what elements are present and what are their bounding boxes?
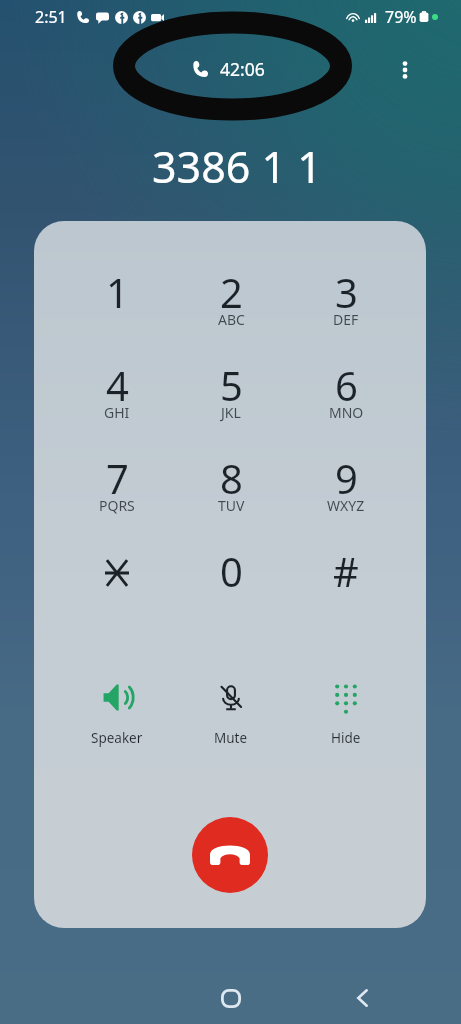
button[interactable]: Hide <box>306 683 386 745</box>
button[interactable]: 0 <box>183 544 279 620</box>
button[interactable]: 4 <box>69 358 165 434</box>
staticText: 3 <box>335 265 358 319</box>
staticText: ABC <box>218 310 245 329</box>
staticText: DEF <box>333 310 359 329</box>
button[interactable]: 2 <box>183 265 279 341</box>
button[interactable]: More options <box>387 52 423 88</box>
staticText: 5 <box>220 358 243 412</box>
button[interactable]: 1 <box>69 265 165 341</box>
staticText: Mute <box>214 729 248 747</box>
button[interactable]: 8 <box>183 451 279 527</box>
staticText: 9 <box>335 451 358 505</box>
staticText: MNO <box>329 403 364 422</box>
button[interactable]: 3 <box>298 265 394 341</box>
staticText: 4 <box>106 358 129 412</box>
staticText: # <box>333 544 359 598</box>
staticText: 8 <box>220 451 243 505</box>
staticText: Speaker <box>91 729 143 747</box>
staticText: 3386 1 1 <box>152 137 322 196</box>
button[interactable]: End call <box>192 817 268 893</box>
button[interactable]: 9 <box>298 451 394 527</box>
staticText: 6 <box>335 358 358 412</box>
button[interactable]: 5 <box>183 358 279 434</box>
button[interactable]: 7 <box>69 451 165 527</box>
staticText: JKL <box>221 403 241 422</box>
staticText: 42:06 <box>220 57 265 81</box>
button[interactable]: 6 <box>298 358 394 434</box>
staticText: PQRS <box>99 496 135 515</box>
staticText: TUV <box>218 496 245 515</box>
button[interactable] <box>69 544 165 620</box>
staticText: Hide <box>331 729 361 747</box>
staticText: 1 <box>106 265 129 319</box>
button[interactable]: Home <box>214 981 248 1015</box>
staticText: WXYZ <box>327 496 365 515</box>
button[interactable]: Speaker <box>77 683 157 745</box>
staticText: 79% <box>385 6 417 28</box>
button[interactable]: Back <box>345 981 379 1015</box>
staticText: 0 <box>220 544 243 598</box>
button[interactable]: # <box>298 544 394 620</box>
staticText: 2:51 <box>35 6 67 28</box>
staticText: 7 <box>106 451 129 505</box>
staticText: GHI <box>104 403 130 422</box>
staticText: 2 <box>220 265 243 319</box>
button[interactable]: Mute <box>191 683 271 745</box>
